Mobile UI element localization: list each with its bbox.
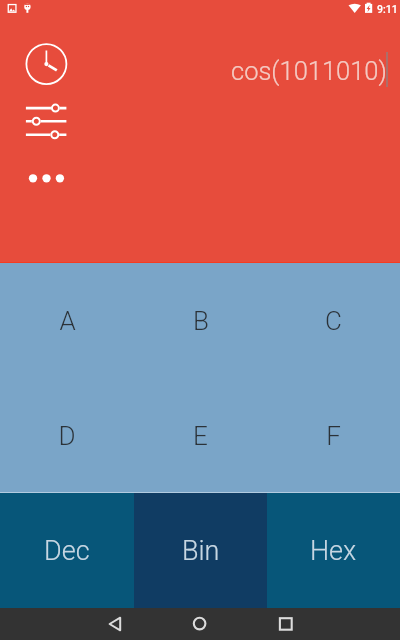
button[interactable]: Bin — [134, 493, 267, 608]
staticText: E — [193, 421, 208, 451]
staticText: A — [59, 306, 76, 336]
staticText: Hex — [310, 535, 357, 567]
button[interactable]: C — [267, 263, 400, 378]
button[interactable]: Hex — [267, 493, 400, 608]
button[interactable]: D — [0, 378, 134, 493]
button[interactable]: More options — [22, 166, 70, 190]
button[interactable]: E — [134, 378, 267, 493]
staticText: F — [326, 421, 341, 451]
staticText: Bin — [182, 535, 220, 567]
button[interactable]: B — [134, 263, 267, 378]
button[interactable]: Settings — [22, 102, 70, 141]
staticText: 9:11 — [377, 3, 398, 15]
staticText: cos(1011010) — [231, 56, 387, 86]
button[interactable]: Dec — [0, 493, 134, 608]
staticText: D — [58, 421, 76, 451]
button[interactable]: F — [267, 378, 400, 493]
staticText: Dec — [44, 535, 90, 567]
button[interactable]: A — [0, 263, 134, 378]
staticText: C — [325, 306, 342, 336]
button[interactable]: History — [22, 40, 71, 89]
staticText: B — [193, 306, 209, 336]
